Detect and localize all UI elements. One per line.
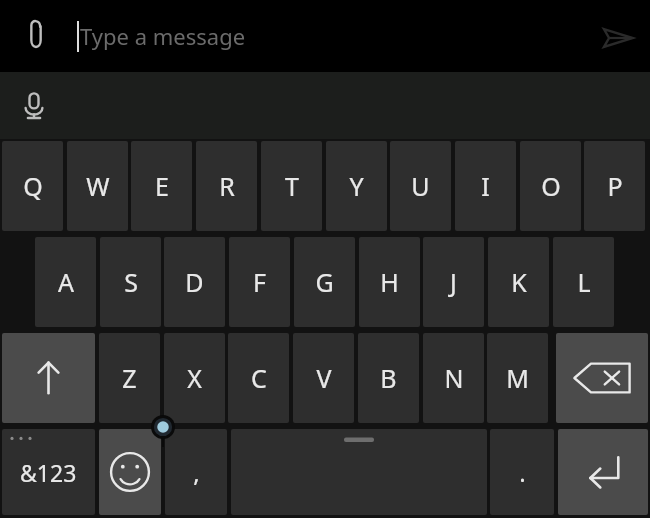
- staticText: C: [251, 361, 267, 395]
- button[interactable]: Send: [598, 18, 638, 58]
- button[interactable]: T: [261, 141, 322, 231]
- button[interactable]: A: [35, 237, 96, 327]
- staticText: Q: [23, 169, 43, 203]
- staticText: E: [155, 169, 169, 203]
- button[interactable]: H: [359, 237, 420, 327]
- staticText: Y: [349, 169, 364, 203]
- staticText: &123: [20, 457, 77, 488]
- staticText: F: [253, 265, 266, 299]
- button[interactable]: V: [293, 333, 354, 423]
- button[interactable]: I: [455, 141, 516, 231]
- button[interactable]: L: [553, 237, 614, 327]
- staticText: V: [316, 361, 332, 395]
- staticText: L: [577, 265, 591, 299]
- staticText: K: [511, 265, 527, 299]
- button[interactable]: E: [131, 141, 192, 231]
- button[interactable]: C: [228, 333, 289, 423]
- staticText: U: [411, 169, 430, 203]
- staticText: G: [315, 265, 334, 299]
- staticText: D: [185, 265, 204, 299]
- button[interactable]: Space: [231, 429, 487, 515]
- button[interactable]: Z: [99, 333, 160, 423]
- button[interactable]: N: [423, 333, 484, 423]
- staticText: R: [219, 169, 235, 203]
- button[interactable]: G: [294, 237, 355, 327]
- staticText: T: [285, 169, 299, 203]
- button[interactable]: S: [100, 237, 161, 327]
- staticText: I: [481, 169, 490, 203]
- button[interactable]: O: [520, 141, 581, 231]
- staticText: M: [506, 361, 529, 395]
- button[interactable]: P: [584, 141, 645, 231]
- staticText: O: [541, 169, 561, 203]
- button[interactable]: M: [487, 333, 548, 423]
- button[interactable]: F: [229, 237, 290, 327]
- button[interactable]: D: [164, 237, 225, 327]
- staticText: ,: [193, 456, 200, 489]
- button[interactable]: &123: [2, 429, 95, 515]
- button[interactable]: K: [488, 237, 549, 327]
- button[interactable]: J: [423, 237, 484, 327]
- button[interactable]: Backspace: [556, 333, 648, 423]
- button[interactable]: Enter: [558, 429, 648, 515]
- staticText: B: [380, 361, 397, 395]
- button[interactable]: ,: [165, 429, 227, 515]
- button[interactable]: U: [390, 141, 451, 231]
- staticText: H: [380, 265, 399, 299]
- button[interactable]: Y: [326, 141, 387, 231]
- button[interactable]: B: [358, 333, 419, 423]
- button[interactable]: W: [67, 141, 128, 231]
- button[interactable]: X: [164, 333, 225, 423]
- button[interactable]: Emoji: [99, 429, 161, 515]
- button[interactable]: Q: [2, 141, 63, 231]
- button[interactable]: Shift: [2, 333, 95, 423]
- staticText: J: [450, 265, 457, 299]
- button[interactable]: Voice input: [14, 86, 54, 126]
- staticText: P: [607, 169, 623, 203]
- button[interactable]: R: [196, 141, 257, 231]
- staticText: S: [124, 265, 138, 299]
- button[interactable]: Type a message: [80, 0, 560, 72]
- button[interactable]: .: [490, 429, 554, 515]
- staticText: Z: [122, 361, 137, 395]
- staticText: W: [86, 169, 110, 203]
- staticText: X: [187, 361, 202, 395]
- staticText: Type a message: [80, 21, 246, 51]
- staticText: N: [444, 361, 464, 395]
- staticText: A: [58, 265, 74, 299]
- button[interactable]: Attach: [18, 18, 54, 54]
- staticText: .: [519, 456, 526, 489]
